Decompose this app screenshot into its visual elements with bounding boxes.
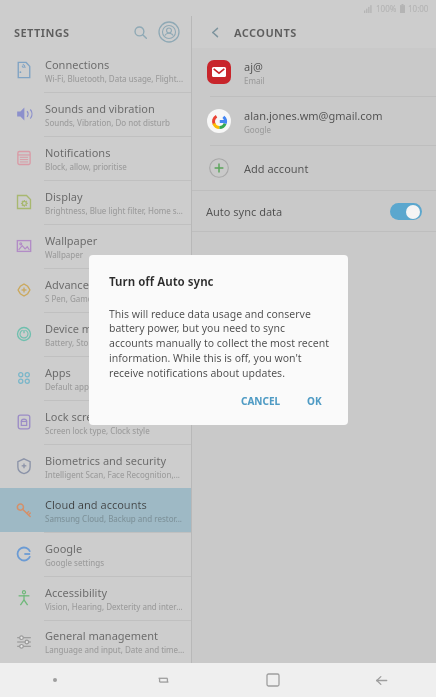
button[interactable]: Device maintenance [0,312,191,356]
staticText: Turn off Auto sync [109,274,214,290]
staticText: This will reduce data usage and conserve… [109,307,330,380]
button[interactable]: General management [0,620,191,663]
staticText: OK [307,394,322,408]
staticText: Accessibility [45,585,108,600]
staticText: Language and input, Date and time,... [45,644,185,655]
button[interactable]: Display [0,180,191,224]
staticText: Sounds and vibration [45,101,155,116]
staticText: Google [244,124,271,135]
button[interactable]: Biometrics and security [0,444,191,488]
staticText: Wallpaper [45,233,98,248]
button[interactable]: Advanced features [0,268,191,312]
staticText: Advanced features [45,277,142,292]
staticText: Google settings [45,557,104,568]
staticText: Block, allow, prioritise [45,161,127,172]
button[interactable]: Auto sync data [192,191,436,231]
staticText: Samsung Cloud, Backup and restor... [45,513,182,524]
staticText: CANCEL [241,394,281,408]
staticText: Screen lock type, Clock style [45,425,150,436]
staticText: Auto sync data [206,204,283,219]
staticText: Notifications [45,145,111,160]
button[interactable]: OK [299,389,330,413]
staticText: General management [45,628,159,643]
staticText: SETTINGS [14,25,70,40]
staticText: S Pen, Games, One-handed mode [45,293,172,304]
staticText: Connections [45,57,110,72]
staticText: Cloud and accounts [45,497,147,512]
button[interactable]: alan.jones.wm@gmail.com [192,97,436,145]
button[interactable]: Wallpaper [0,224,191,268]
button[interactable]: Account [155,18,183,46]
button[interactable]: Notifications [0,136,191,180]
staticText: Wallpaper [45,249,84,260]
staticText: aj@ [244,59,263,74]
staticText: Display [45,189,83,204]
staticText: Biometrics and security [45,453,166,468]
staticText: Google [45,541,83,556]
button[interactable]: Google [0,532,191,576]
button[interactable]: Lock screen and security [0,400,191,444]
staticText: Intelligent Scan, Face Recognition,... [45,469,180,480]
staticText: Default apps, App permissions [45,381,160,392]
button[interactable]: Connections [0,48,191,92]
button[interactable]: Accessibility [0,576,191,620]
staticText: Add account [244,161,309,176]
staticText: Device maintenance [45,321,150,336]
staticText: 100% [376,3,397,14]
button[interactable]: Back [202,19,228,45]
button[interactable]: aj@ [192,48,436,96]
staticText: Brightness, Blue light filter, Home sc..… [45,205,185,216]
button[interactable]: Cloud and accounts [0,488,191,532]
button[interactable]: CANCEL [233,389,289,413]
staticText: Vision, Hearing, Dexterity and intera... [45,601,185,612]
button[interactable]: Recents [109,663,218,697]
button[interactable]: Add account [192,146,436,190]
staticText: Apps [45,365,71,380]
staticText: Sounds, Vibration, Do not disturb [45,117,170,128]
staticText: Battery, Storage, Memory [45,337,142,348]
staticText: Wi-Fi, Bluetooth, Data usage, Flight... [45,73,184,84]
button[interactable]: Home [218,663,327,697]
button[interactable]: Search [127,19,153,45]
staticText: 10:00 [408,3,429,14]
staticText: alan.jones.wm@gmail.com [244,108,383,123]
button[interactable]: Sounds and vibration [0,92,191,136]
button[interactable]: Back [327,663,436,697]
staticText: Lock screen and security [45,409,172,424]
button[interactable]: Apps [0,356,191,400]
staticText: Email [244,75,265,86]
staticText: ACCOUNTS [234,25,297,40]
